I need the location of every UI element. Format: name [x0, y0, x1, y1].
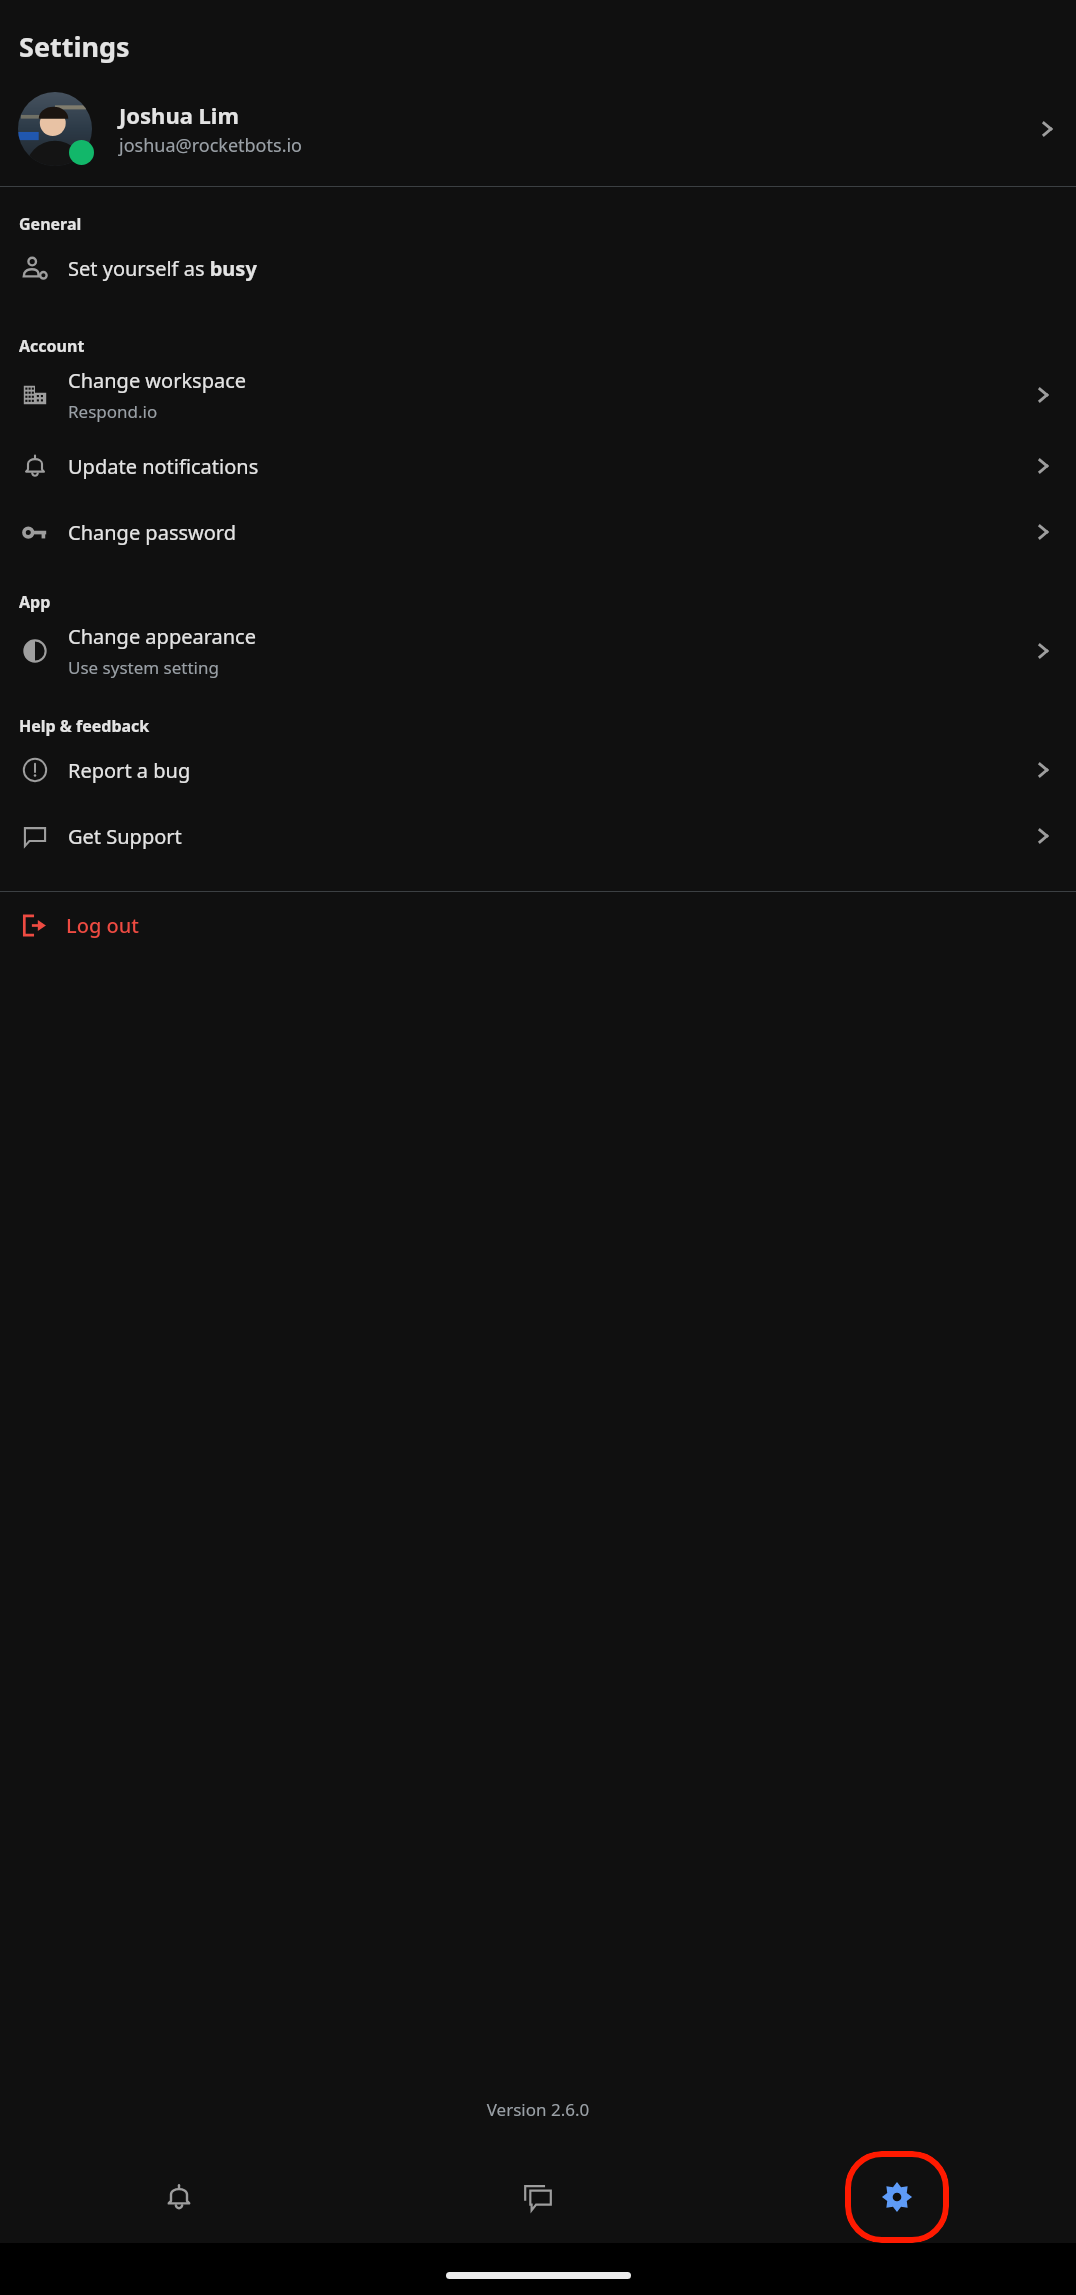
staticText: Set yourself as busy: [68, 255, 257, 282]
button[interactable]: Update notifications: [0, 433, 1076, 499]
staticText: General: [19, 213, 82, 235]
staticText: Respond.io: [68, 400, 158, 423]
staticText: Update notifications: [68, 453, 259, 480]
button[interactable]: Notifications: [0, 2151, 358, 2243]
staticText: Settings: [19, 28, 130, 65]
staticText: Change appearance: [68, 623, 256, 650]
staticText: Joshua Lim: [119, 100, 239, 130]
staticText: App: [19, 591, 51, 613]
button[interactable]: Get Support: [0, 803, 1076, 869]
staticText: Log out: [66, 912, 139, 939]
staticText: Get Support: [68, 823, 182, 850]
staticText: Help & feedback: [19, 715, 150, 737]
button[interactable]: Set yourself as busy: [0, 235, 1076, 301]
staticText: Report a bug: [68, 757, 191, 784]
button[interactable]: Change password: [0, 499, 1076, 565]
staticText: Use system setting: [68, 656, 219, 679]
button[interactable]: Messages: [358, 2151, 717, 2243]
button[interactable]: Change appearance: [0, 613, 1076, 689]
staticText: Version 2.6.0: [0, 2098, 1076, 2121]
button[interactable]: Joshua Lim: [0, 91, 1076, 167]
button[interactable]: Settings: [845, 2151, 949, 2243]
staticText: joshua@rocketbots.io: [119, 133, 302, 158]
button[interactable]: Log out: [0, 892, 1076, 958]
staticText: Change workspace: [68, 367, 247, 394]
staticText: Account: [19, 335, 85, 357]
button[interactable]: Change workspace: [0, 357, 1076, 433]
staticText: Change password: [68, 519, 237, 546]
button[interactable]: Report a bug: [0, 737, 1076, 803]
